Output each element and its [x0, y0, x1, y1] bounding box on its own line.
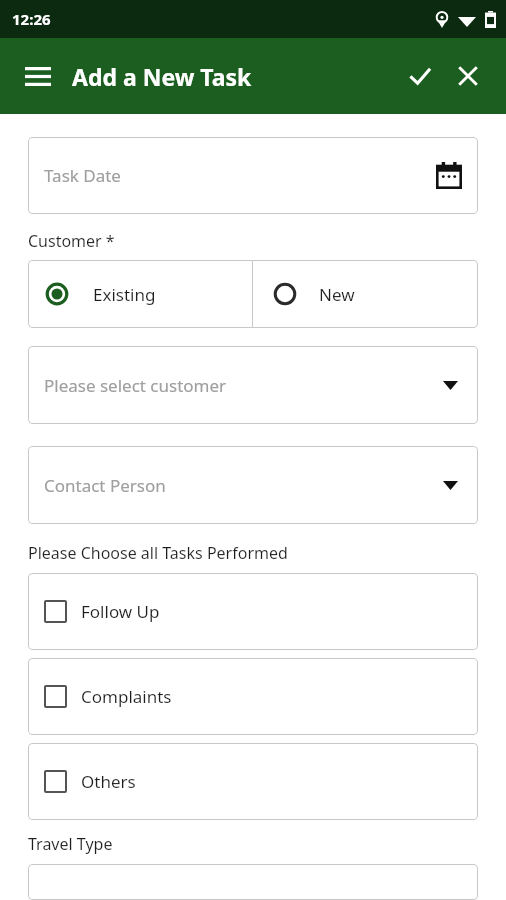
button[interactable]	[28, 864, 478, 900]
staticText: Complaints	[81, 685, 172, 708]
button[interactable]: Save	[396, 52, 444, 100]
staticText: Travel Type	[28, 833, 113, 855]
staticText: Please Choose all Tasks Performed	[28, 542, 288, 564]
staticText: Follow Up	[81, 600, 160, 623]
button[interactable]: Menu	[16, 54, 60, 98]
staticText: Customer *	[28, 230, 115, 252]
staticText: 12:26	[12, 9, 51, 29]
staticText: Others	[81, 770, 136, 793]
staticText: Please select customer	[44, 374, 227, 397]
button[interactable]: Task Date	[28, 137, 478, 214]
button[interactable]: Contact Person	[28, 446, 478, 524]
button[interactable]: Close	[444, 52, 492, 100]
staticText: Existing	[93, 283, 156, 306]
staticText: New	[319, 283, 355, 306]
staticText: Add a New Task	[72, 61, 252, 92]
button[interactable]: New	[253, 260, 478, 328]
button[interactable]: Others	[28, 743, 478, 820]
button[interactable]: Follow Up	[28, 573, 478, 650]
staticText: Task Date	[44, 164, 121, 187]
button[interactable]: Please select customer	[28, 346, 478, 424]
staticText: Contact Person	[44, 474, 166, 497]
button[interactable]: Complaints	[28, 658, 478, 735]
button[interactable]: Existing	[28, 260, 252, 328]
